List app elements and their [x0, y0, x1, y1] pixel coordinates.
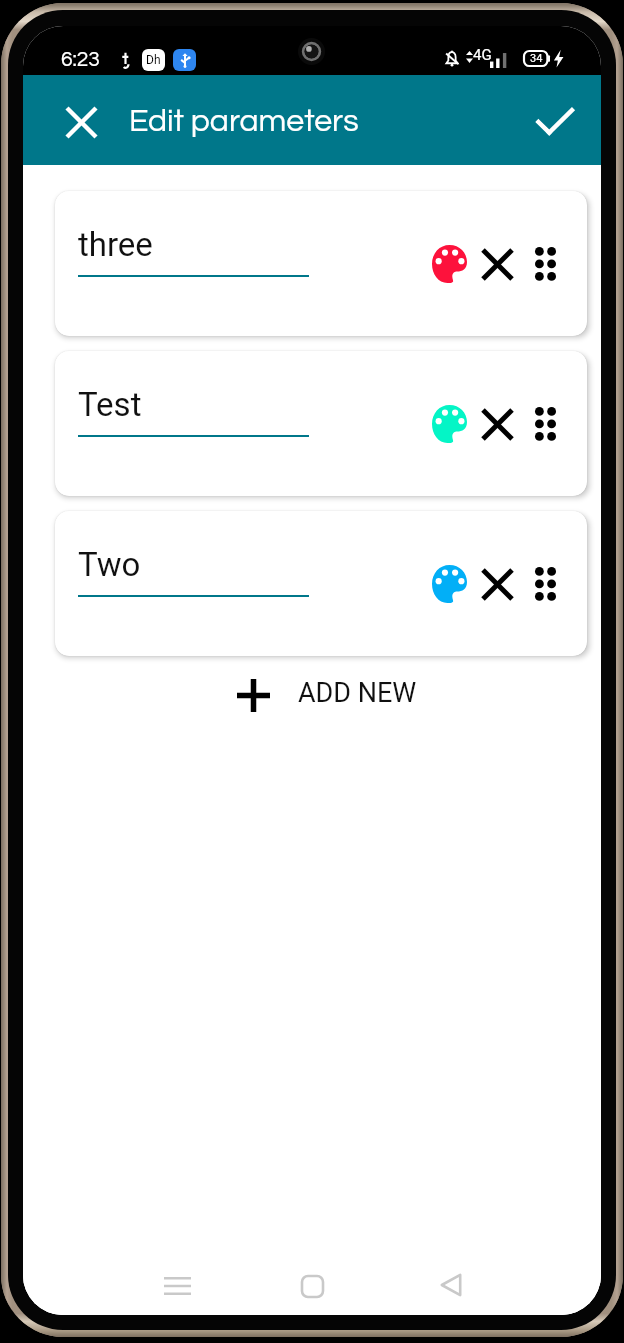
button[interactable]: ADD NEW: [221, 664, 433, 721]
staticText: Test: [78, 385, 142, 424]
button[interactable]: Choose colour: [423, 241, 469, 287]
staticText: Dh: [146, 53, 161, 67]
button[interactable]: Delete: [474, 401, 520, 447]
button[interactable]: Back: [423, 1257, 479, 1313]
staticText: 6:23: [61, 49, 100, 71]
button[interactable]: Reorder: [522, 558, 568, 604]
button[interactable]: Choose colour: [423, 561, 469, 607]
button[interactable]: Reorder: [522, 398, 568, 444]
staticText: 4G: [473, 46, 492, 64]
button[interactable]: Confirm: [531, 98, 579, 146]
button[interactable]: Test: [55, 351, 587, 496]
button[interactable]: Delete: [474, 241, 520, 287]
staticText: ADD NEW: [298, 677, 417, 709]
button[interactable]: Close: [58, 99, 104, 145]
button[interactable]: Reorder: [522, 238, 568, 284]
staticText: three: [78, 225, 153, 264]
button[interactable]: Two: [55, 511, 587, 656]
button[interactable]: Home: [284, 1258, 340, 1314]
button[interactable]: Delete: [474, 561, 520, 607]
staticText: 34: [530, 52, 543, 65]
button[interactable]: three: [55, 191, 587, 336]
staticText: Edit parameters: [129, 105, 359, 138]
button[interactable]: Recents: [149, 1258, 205, 1314]
button[interactable]: Choose colour: [423, 401, 469, 447]
staticText: Two: [78, 545, 141, 584]
